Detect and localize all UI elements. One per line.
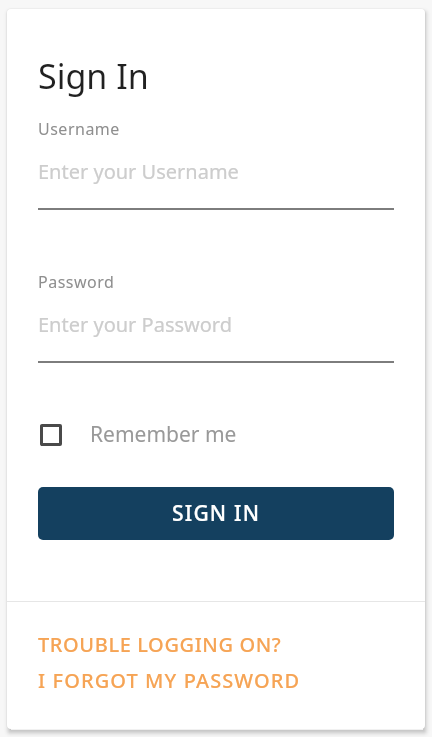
staticText: Enter your Password (38, 311, 233, 338)
staticText: Username (38, 118, 120, 140)
staticText: Sign In (38, 53, 149, 99)
button[interactable]: Remember me (38, 420, 237, 449)
staticText: TROUBLE LOGGING ON? (38, 631, 282, 658)
staticText: Remember me (90, 420, 237, 449)
button[interactable]: TROUBLE LOGGING ON? (38, 631, 282, 658)
staticText: I FORGOT MY PASSWORD (38, 667, 301, 694)
staticText: Password (38, 271, 115, 293)
button[interactable]: SIGN IN (38, 487, 394, 540)
button[interactable]: I FORGOT MY PASSWORD (38, 667, 301, 694)
staticText: Enter your Username (38, 158, 239, 185)
staticText: SIGN IN (172, 499, 261, 528)
